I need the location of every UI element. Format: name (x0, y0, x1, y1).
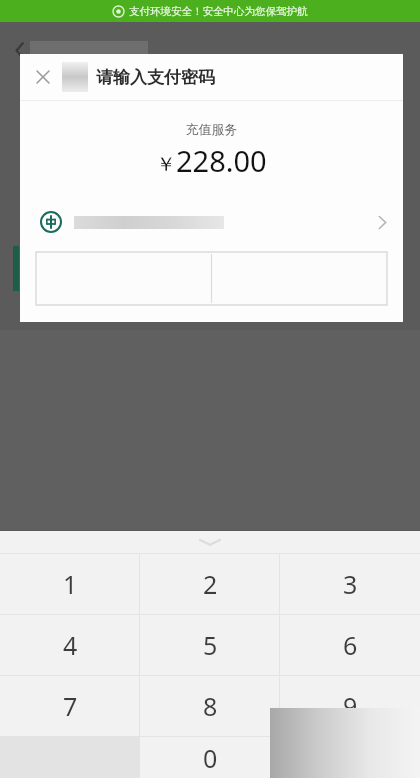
button[interactable]: Password input (36, 252, 387, 305)
staticText: 228.00 (176, 141, 267, 180)
button[interactable]: 4 (0, 615, 140, 675)
other: Security (113, 6, 124, 17)
staticText: 5 (203, 628, 218, 662)
button[interactable]: Bank card (20, 200, 403, 244)
other: Change payment method (378, 215, 387, 230)
staticText: 请输入支付密码 (96, 67, 215, 88)
staticText: 0 (203, 741, 218, 775)
staticText: 2 (203, 567, 218, 601)
staticText: 6 (343, 628, 358, 662)
other: Bank card (40, 211, 62, 233)
staticText: 8 (203, 689, 218, 723)
button[interactable]: 6 (280, 615, 420, 675)
staticText: 7 (63, 689, 78, 723)
button[interactable]: 3 (280, 554, 420, 614)
button[interactable]: 8 (140, 676, 280, 736)
button[interactable]: 9 (280, 676, 420, 736)
staticText: 4 (63, 628, 78, 662)
button[interactable]: 2 (140, 554, 280, 614)
button[interactable]: 5 (140, 615, 280, 675)
staticText: ￥ (156, 152, 176, 177)
staticText: 支付环境安全！安全中心为您保驾护航 (129, 5, 308, 18)
staticText: 3 (343, 567, 358, 601)
staticText: 9 (343, 689, 358, 723)
button[interactable]: Delete (280, 737, 420, 778)
button[interactable]: 1 (0, 554, 140, 614)
button[interactable]: Close (28, 62, 58, 92)
button[interactable]: 0 (140, 737, 280, 778)
staticText: 充值服务 (20, 121, 403, 137)
button[interactable]: 7 (0, 676, 140, 736)
staticText: 1 (63, 567, 78, 601)
button[interactable]: Security (0, 0, 420, 22)
